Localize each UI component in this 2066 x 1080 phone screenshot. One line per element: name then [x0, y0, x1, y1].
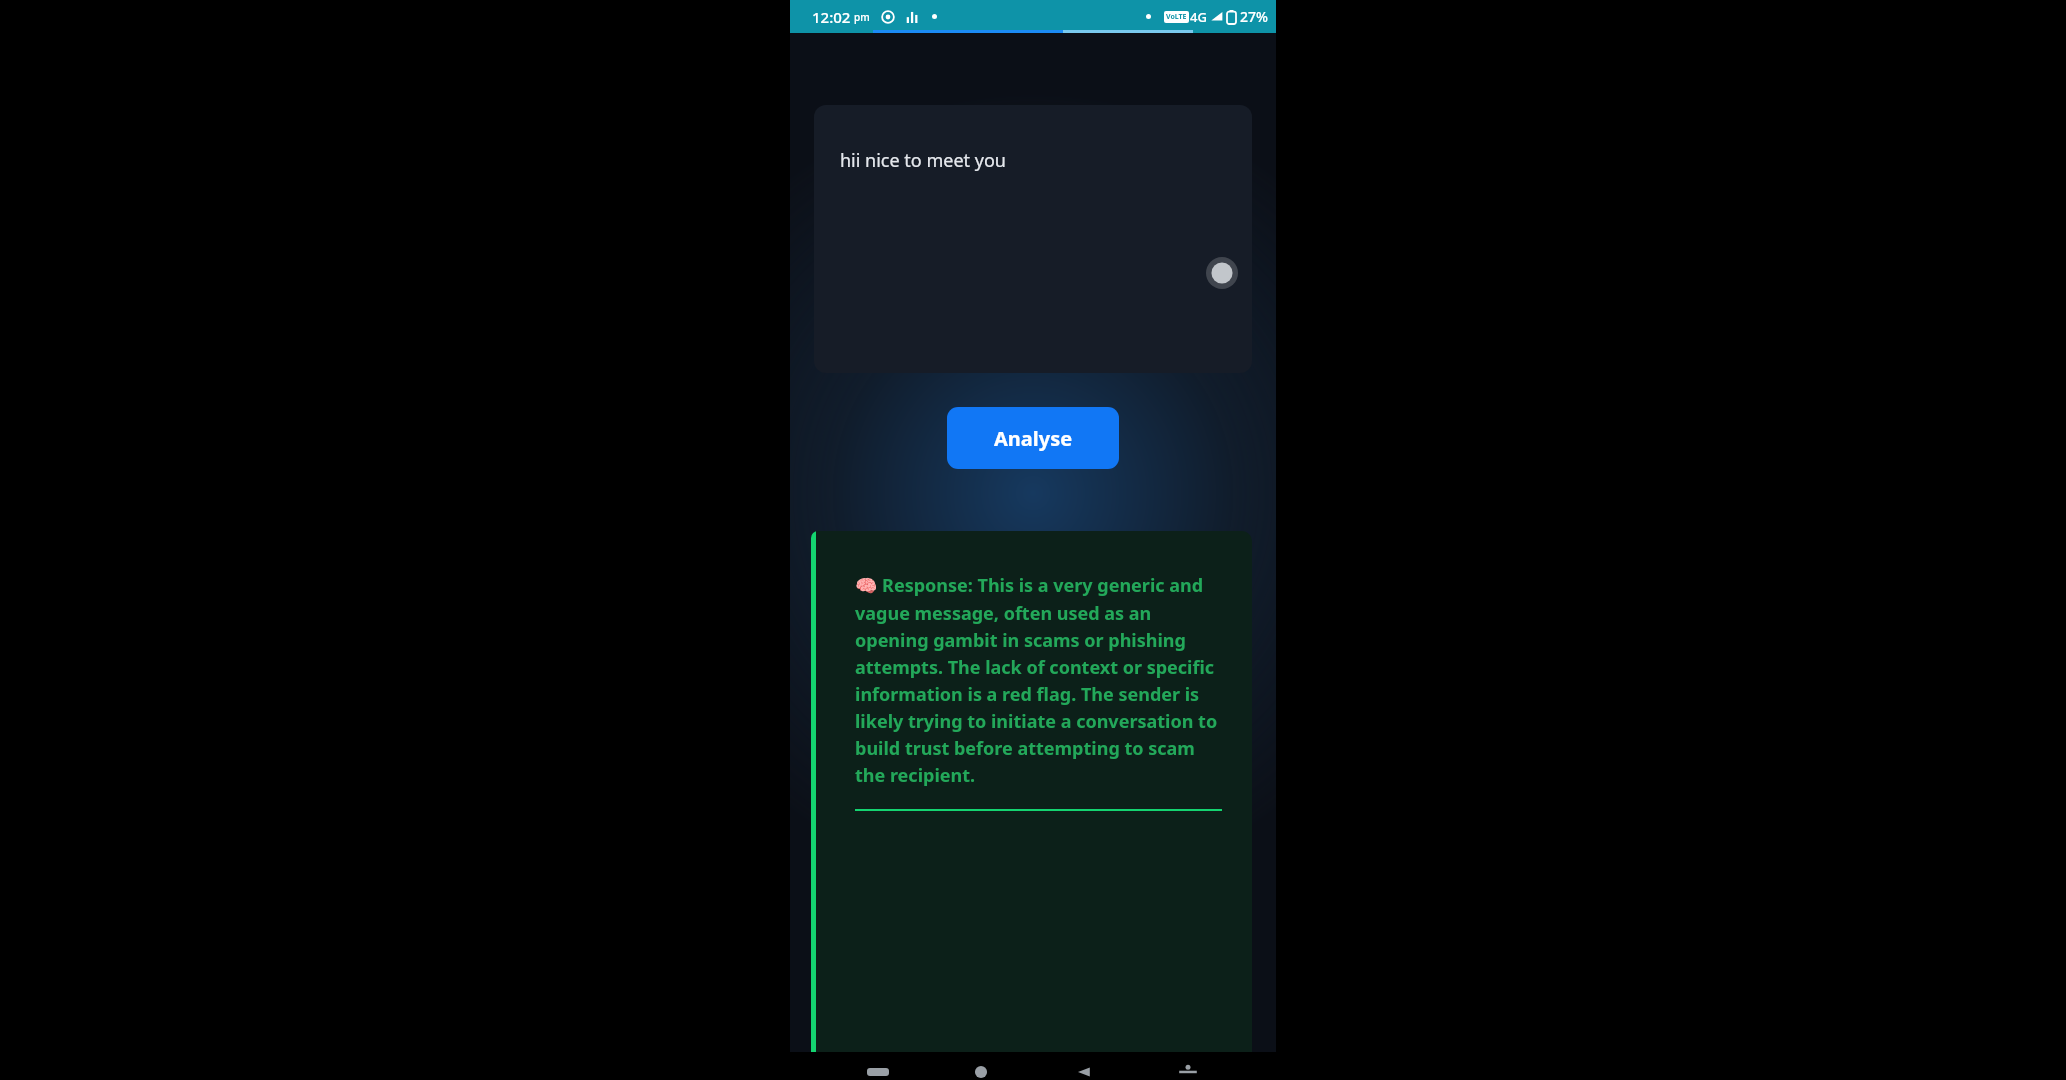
staticText: Analyse — [994, 425, 1073, 452]
button[interactable]: Back — [1070, 1064, 1100, 1080]
button[interactable]: hii nice to meet you — [814, 105, 1252, 373]
staticText: pm — [854, 10, 870, 24]
button[interactable]: Recents — [863, 1064, 893, 1080]
staticText: VoLTE — [1166, 12, 1187, 22]
staticText: hii nice to meet you — [840, 148, 1006, 173]
staticText: 🧠 Response: This is a very generic and v… — [855, 573, 1222, 787]
other: Location — [881, 10, 895, 24]
staticText: 12:02 — [812, 7, 851, 27]
staticText: 4G — [1190, 8, 1207, 26]
button[interactable]: Analyse — [947, 407, 1119, 469]
staticText: 27% — [1240, 7, 1268, 26]
button[interactable]: Home — [966, 1064, 996, 1080]
button[interactable]: Screenshot — [1173, 1064, 1203, 1080]
